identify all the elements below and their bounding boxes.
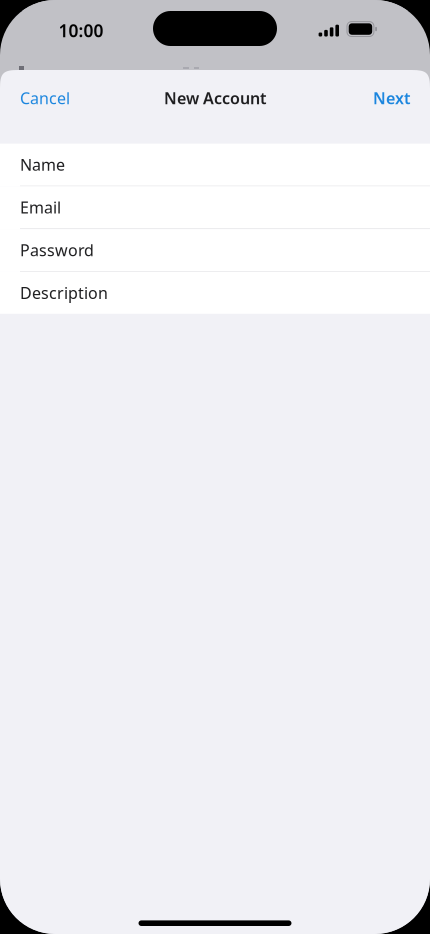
button[interactable]: Next <box>353 76 430 120</box>
staticText: Email <box>20 197 61 218</box>
button[interactable]: Password <box>0 229 430 272</box>
button[interactable]: Cancel <box>0 76 90 120</box>
button[interactable]: Email <box>0 186 430 229</box>
button[interactable]: Description <box>0 272 430 314</box>
staticText: Cancel <box>20 87 70 109</box>
staticText: Name <box>20 154 65 175</box>
staticText: 10:00 <box>58 19 103 42</box>
button[interactable]: Name <box>0 144 430 186</box>
staticText: Password <box>20 239 94 261</box>
staticText: Description <box>20 282 108 303</box>
staticText: New Account <box>164 87 266 109</box>
staticText: Next <box>373 87 410 109</box>
